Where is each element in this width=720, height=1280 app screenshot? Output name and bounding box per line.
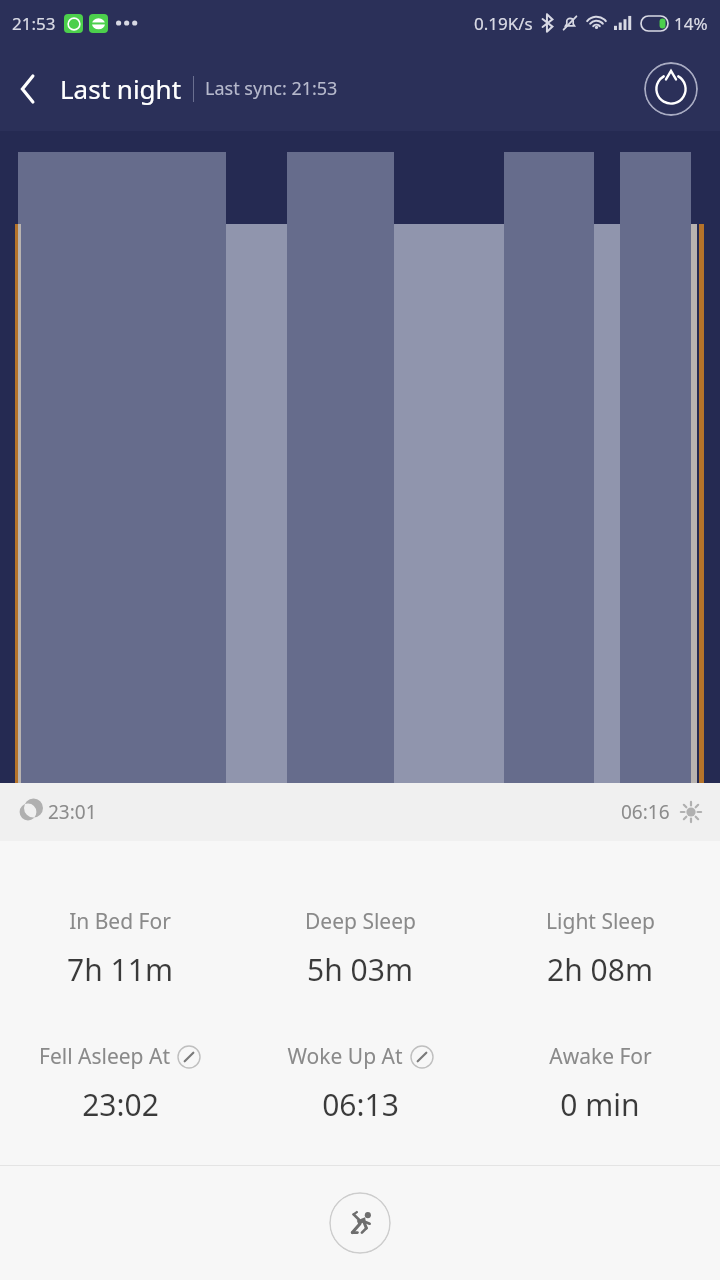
button[interactable]: Sync xyxy=(644,62,698,116)
staticText: 5h 03m xyxy=(307,949,413,990)
button[interactable]: Awake For xyxy=(480,1042,720,1125)
staticText: 0 min xyxy=(560,1084,640,1125)
button[interactable]: In Bed For xyxy=(0,907,240,990)
staticText: Last sync: 21:53 xyxy=(205,76,338,101)
button[interactable]: Deep Sleep xyxy=(240,907,480,990)
staticText: 21:53 xyxy=(12,12,56,35)
button[interactable]: Fell Asleep At xyxy=(0,1042,240,1125)
staticText: 23:01 xyxy=(48,799,97,825)
staticText: Light Sleep xyxy=(546,907,655,936)
staticText: Fell Asleep At xyxy=(39,1042,170,1071)
button[interactable]: Woke Up At xyxy=(240,1042,480,1125)
staticText: 23:02 xyxy=(82,1084,159,1125)
staticText: 2h 08m xyxy=(547,949,653,990)
staticText: 06:13 xyxy=(322,1084,399,1125)
staticText: In Bed For xyxy=(69,907,171,936)
staticText: 14% xyxy=(674,12,708,35)
staticText: 7h 11m xyxy=(67,949,173,990)
staticText: Awake For xyxy=(549,1042,652,1071)
button[interactable]: Activity xyxy=(329,1192,391,1254)
button[interactable]: Light Sleep xyxy=(480,907,720,990)
staticText: 06:16 xyxy=(621,799,670,825)
button[interactable]: Back xyxy=(0,61,56,117)
staticText: Deep Sleep xyxy=(305,907,416,936)
staticText: 0.19K/s xyxy=(474,12,533,35)
staticText: Woke Up At xyxy=(287,1042,403,1071)
staticText: Last night xyxy=(60,71,182,106)
